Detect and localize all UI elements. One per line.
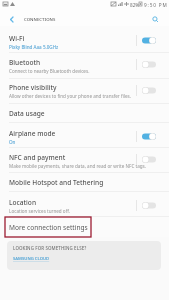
staticText: Airplane mode xyxy=(9,129,56,138)
button[interactable]: Wi-Fi xyxy=(0,26,169,52)
staticText: Bluetooth xyxy=(9,58,41,67)
button[interactable]: Phone visibility xyxy=(0,79,169,103)
staticText: Phone visibility xyxy=(9,83,57,92)
button[interactable]: Turn off xyxy=(142,37,156,44)
button[interactable]: More connection settings xyxy=(5,217,91,237)
button[interactable]: Data usage xyxy=(0,104,169,122)
staticText: Data usage xyxy=(9,109,45,118)
button[interactable]: Turn on xyxy=(142,202,156,209)
staticText: 9:50 PM xyxy=(144,2,168,8)
button[interactable]: Bluetooth xyxy=(0,53,169,78)
staticText: On xyxy=(9,139,16,145)
button[interactable]: Turn on xyxy=(142,61,156,68)
staticText: NFC and payment xyxy=(9,153,66,162)
staticText: Location services turned off. xyxy=(9,208,70,214)
button[interactable]: Airplane mode xyxy=(0,123,169,147)
button[interactable]: Back xyxy=(4,12,18,26)
button[interactable]: Turn off xyxy=(142,133,156,140)
staticText: Make mobile payments, share data, and re… xyxy=(9,163,146,169)
button[interactable]: Search xyxy=(149,13,161,25)
button[interactable]: Location xyxy=(0,192,169,216)
button[interactable]: NFC and payment xyxy=(0,148,169,172)
staticText: Mobile Hotspot and Tethering xyxy=(9,178,104,187)
staticText: LOOKING FOR SOMETHING ELSE? xyxy=(13,245,87,251)
button[interactable]: Turn on xyxy=(142,87,156,94)
staticText: Allow other devices to find your phone a… xyxy=(9,93,131,99)
staticText: More connection settings xyxy=(9,223,88,232)
button[interactable]: Turn on xyxy=(142,156,156,163)
staticText: SAMSUNG CLOUD xyxy=(13,256,50,262)
button[interactable]: Mobile Hotspot and Tethering xyxy=(0,173,169,191)
button[interactable]: SAMSUNG CLOUD xyxy=(13,256,50,262)
staticText: Wi-Fi xyxy=(9,34,25,43)
staticText: CONNECTIONS xyxy=(24,16,56,22)
staticText: Connect to nearby Bluetooth devices. xyxy=(9,68,90,74)
staticText: 82% xyxy=(130,2,140,8)
staticText: Pixky Blind Aaa 5.0GHz xyxy=(9,44,59,50)
staticText: Location xyxy=(9,198,37,207)
